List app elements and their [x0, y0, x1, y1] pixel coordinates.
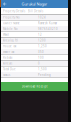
staticText: 1,250 [38, 44, 47, 48]
button[interactable]: Rebate [1, 55, 68, 61]
staticText: House Tax [3, 44, 16, 48]
staticText: Area (sq ft) [3, 39, 18, 42]
button[interactable]: Ward [1, 32, 68, 38]
staticText: Property Details [3, 9, 25, 13]
staticText: 1024 [38, 16, 46, 19]
staticText: 1200 [38, 39, 46, 42]
button[interactable]: Property No [1, 14, 68, 20]
staticText: Pending [38, 73, 51, 77]
staticText: Water Tax [3, 50, 14, 54]
staticText: 9876543210 [38, 27, 58, 31]
staticText: 12 [38, 33, 42, 36]
staticText: Owner Name [3, 21, 20, 25]
staticText: Ramesh Kumar [38, 21, 57, 25]
button[interactable]: Mobile No [1, 26, 68, 32]
staticText: Property No [3, 16, 20, 19]
button[interactable]: Bill Details [28, 9, 43, 13]
button[interactable]: Download Receipt [1, 82, 68, 91]
staticText: Ward [3, 33, 9, 36]
staticText: Rebate [3, 56, 13, 59]
staticText: 100 [38, 56, 44, 59]
staticText: Download Receipt [21, 85, 47, 88]
button[interactable]: Arrears [1, 60, 68, 66]
staticText: Mobile No [3, 27, 18, 31]
button[interactable]: Owner Name [1, 20, 68, 26]
staticText: 1,500 [38, 67, 47, 71]
button[interactable]: House Tax [1, 43, 68, 49]
staticText: 0 [38, 62, 40, 65]
staticText: Total Due [3, 67, 16, 71]
button[interactable]: Area (sq ft) [1, 37, 68, 43]
button[interactable]: Total Due [1, 66, 68, 72]
button[interactable]: Status [1, 72, 68, 78]
staticText: Bill Details [28, 9, 43, 13]
staticText: 350 [38, 50, 44, 54]
staticText: Status [3, 73, 10, 77]
button[interactable]: Back [1, 0, 9, 8]
staticText: Gurukul Nagar [21, 1, 47, 7]
button[interactable]: Property Details [3, 9, 25, 13]
staticText: Arrears [3, 62, 12, 65]
button[interactable]: Water Tax [1, 49, 68, 55]
